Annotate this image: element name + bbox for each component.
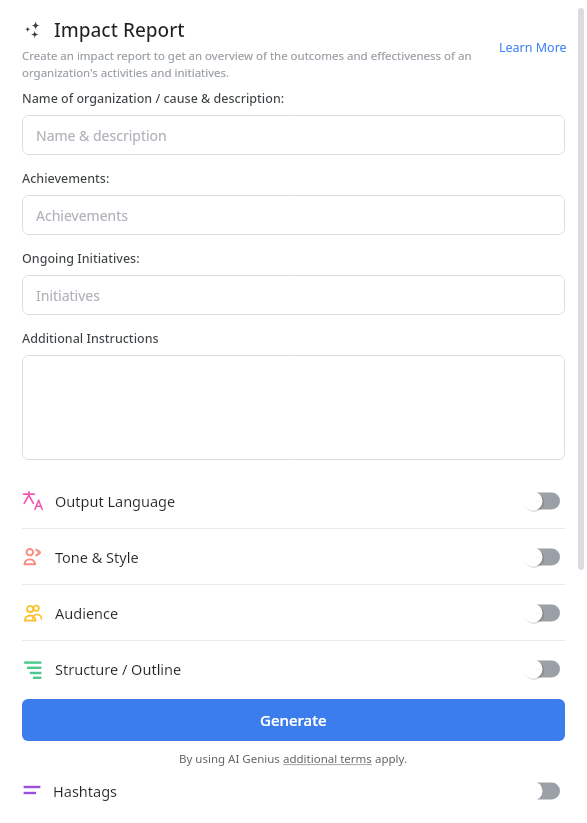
button[interactable]: Generate <box>22 699 565 741</box>
button[interactable]: Output Language <box>0 473 587 528</box>
button[interactable]: additional terms <box>283 751 372 767</box>
staticText: Name of organization / cause & descripti… <box>22 90 285 107</box>
button[interactable] <box>22 355 565 460</box>
staticText: Tone & Style <box>55 547 523 567</box>
button[interactable]: Structure / Outline <box>0 641 587 696</box>
button[interactable]: Toggle <box>523 659 560 679</box>
button[interactable]: Audience <box>0 585 587 640</box>
button[interactable]: Initiatives <box>22 275 565 315</box>
staticText: Achievements <box>36 206 128 225</box>
staticText: Impact Report <box>54 17 185 43</box>
button[interactable]: Achievements <box>22 195 565 235</box>
staticText: Name & description <box>36 126 167 145</box>
staticText: Achievements: <box>22 170 110 187</box>
button[interactable]: Name & description <box>22 115 565 155</box>
staticText: Structure / Outline <box>55 659 523 679</box>
button[interactable]: Tone & Style <box>0 529 587 584</box>
staticText: Output Language <box>55 491 523 511</box>
staticText: apply. <box>372 751 408 767</box>
button[interactable]: Toggle <box>523 603 560 623</box>
staticText: Ongoing Initiatives: <box>22 250 140 267</box>
staticText: By using AI Genius <box>179 751 283 767</box>
button[interactable]: Learn More <box>497 37 569 58</box>
staticText: additional terms <box>283 751 372 767</box>
staticText: Learn More <box>499 39 567 56</box>
staticText: Additional Instructions <box>22 330 159 347</box>
staticText: Hashtags <box>53 781 523 801</box>
staticText: Audience <box>55 603 523 623</box>
staticText: Create an impact report to get an overvi… <box>22 48 489 80</box>
button[interactable]: Toggle <box>523 491 560 511</box>
button[interactable]: Hashtags <box>0 776 587 806</box>
button[interactable]: Toggle <box>523 781 560 801</box>
staticText: Generate <box>260 710 327 730</box>
staticText: Initiatives <box>36 286 100 305</box>
button[interactable]: Toggle <box>523 547 560 567</box>
